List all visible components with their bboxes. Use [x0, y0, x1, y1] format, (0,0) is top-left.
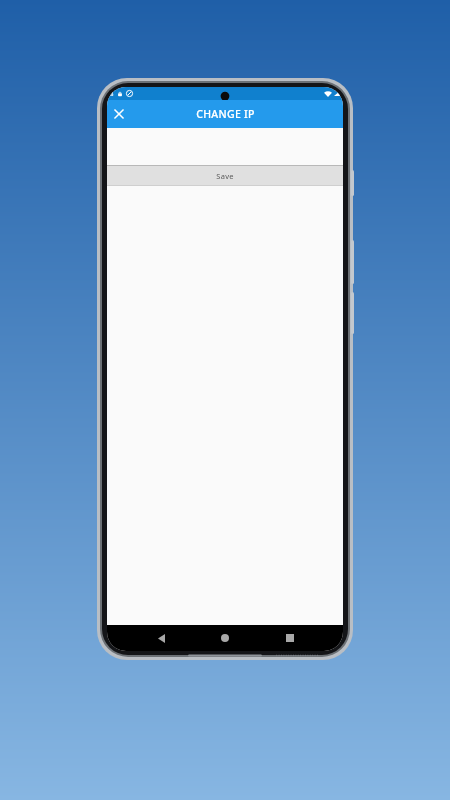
button[interactable]: Save [107, 166, 343, 185]
button[interactable]: Home [214, 627, 236, 649]
button[interactable]: Close [109, 104, 129, 124]
button[interactable]: Recent apps [279, 627, 301, 649]
staticText: Save [216, 171, 234, 181]
button[interactable]: Back [150, 627, 172, 649]
staticText: CHANGE IP [196, 107, 255, 121]
staticText: 8 [110, 90, 114, 97]
